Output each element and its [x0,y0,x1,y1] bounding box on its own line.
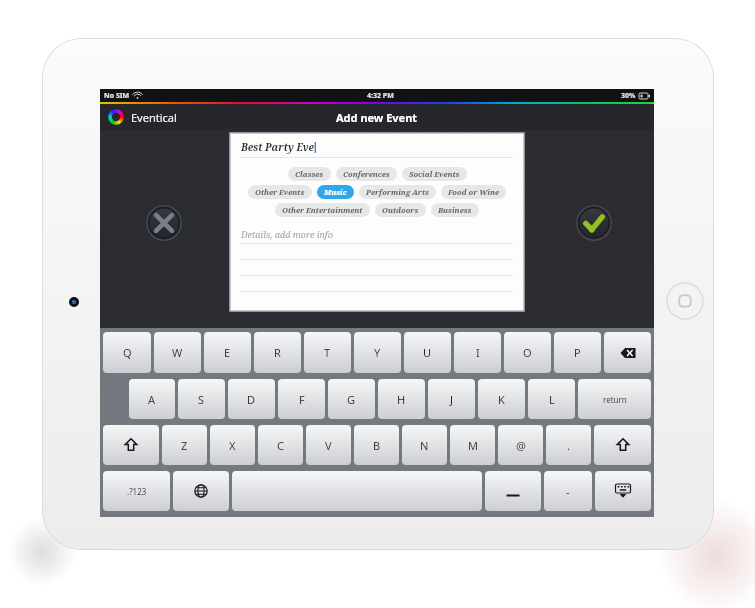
button[interactable]: I [454,332,501,375]
staticText: Z [181,438,188,453]
button[interactable]: N [402,425,447,467]
staticText: T [324,345,331,360]
staticText: Performing Arts [366,187,429,197]
button[interactable]: Save event [576,205,612,241]
button[interactable]: Conferences [336,167,397,181]
staticText: O [523,345,532,360]
staticText: W [172,345,183,360]
staticText: X [229,438,236,453]
staticText: . [567,438,570,453]
button[interactable]: L [528,379,575,421]
button[interactable]: Z [162,425,207,467]
button[interactable]: Performing Arts [359,185,436,199]
staticText: Food or Wine [448,187,499,197]
staticText: R [274,345,281,360]
button[interactable]: E [204,332,251,375]
staticText: Best Party Eve [241,140,314,154]
button[interactable]: Outdoors [375,203,426,217]
button[interactable]: A [129,379,175,421]
button[interactable]: B [354,425,399,467]
staticText: Outdoors [382,205,419,215]
button[interactable]: @ [498,425,543,467]
button[interactable]: Other Events [248,185,312,199]
button[interactable]: Cancel [146,205,182,241]
button[interactable]: H [378,379,425,421]
staticText: Other Entertainment [282,205,363,215]
button[interactable]: J [428,379,475,421]
staticText: P [574,345,581,360]
staticText: 4:32 PM [367,91,394,101]
button[interactable]: K [478,379,525,421]
staticText: D [247,392,256,407]
staticText: .?123 [127,486,147,497]
button[interactable]: T [304,332,351,375]
staticText: Business [438,205,472,215]
button[interactable]: D [228,379,275,421]
button[interactable]: S [178,379,225,421]
button[interactable]: Shift [594,425,651,467]
button[interactable]: Social Events [402,167,467,181]
staticText: K [498,392,505,407]
staticText: U [423,345,432,360]
button[interactable]: - [544,471,592,513]
button[interactable]: Other Entertainment [275,203,370,217]
button[interactable]: Hide keyboard [595,471,651,513]
button[interactable]: Food or Wine [441,185,506,199]
staticText: Conferences [343,169,390,179]
button[interactable]: W [154,332,201,375]
staticText: - [566,484,570,499]
staticText: 30% [621,91,636,101]
staticText: @ [516,438,526,453]
button[interactable]: Business [431,203,479,217]
button[interactable]: . [546,425,591,467]
button[interactable]: M [450,425,495,467]
button[interactable]: Backspace [604,332,651,375]
button[interactable]: C [258,425,303,467]
button[interactable]: Home [666,282,704,320]
staticText: G [347,392,356,407]
staticText: J [450,392,454,407]
staticText: F [299,392,305,407]
staticText: H [397,392,406,407]
button[interactable]: Shift [103,425,159,467]
staticText: Y [374,345,381,360]
button[interactable]: P [554,332,601,375]
staticText: C [277,438,284,453]
button[interactable]: R [254,332,301,375]
button[interactable]: .?123 [103,471,170,513]
staticText: Other Events [255,187,305,197]
staticText: Eventical [131,110,177,125]
staticText: A [148,392,156,407]
button[interactable]: X [210,425,255,467]
staticText: Social Events [409,169,460,179]
button[interactable]: Q [103,332,151,375]
staticText: B [373,438,381,453]
button[interactable]: O [504,332,551,375]
staticText: L [549,392,555,407]
staticText: I [476,345,480,360]
button[interactable]: Music [317,185,354,199]
staticText: Details, add more info [241,228,333,240]
button[interactable]: Y [354,332,401,375]
button[interactable]: Underscore [485,471,541,513]
staticText: S [198,392,205,407]
staticText: M [468,438,478,453]
button[interactable]: G [328,379,375,421]
staticText: E [224,345,231,360]
button[interactable]: return [578,379,651,421]
button[interactable]: Eventical logo [108,109,124,125]
staticText: Music [324,187,347,197]
button[interactable]: Classes [288,167,331,181]
staticText: Add new Event [336,110,418,125]
button[interactable]: U [404,332,451,375]
staticText: N [420,438,429,453]
staticText: Classes [295,169,324,179]
staticText: No SIM [104,91,130,101]
staticText: Q [123,345,132,360]
button[interactable]: Space [232,471,482,513]
button[interactable]: V [306,425,351,467]
button[interactable]: F [278,379,325,421]
staticText: return [603,394,627,405]
staticText: V [325,438,332,453]
button[interactable]: Change language [173,471,229,513]
